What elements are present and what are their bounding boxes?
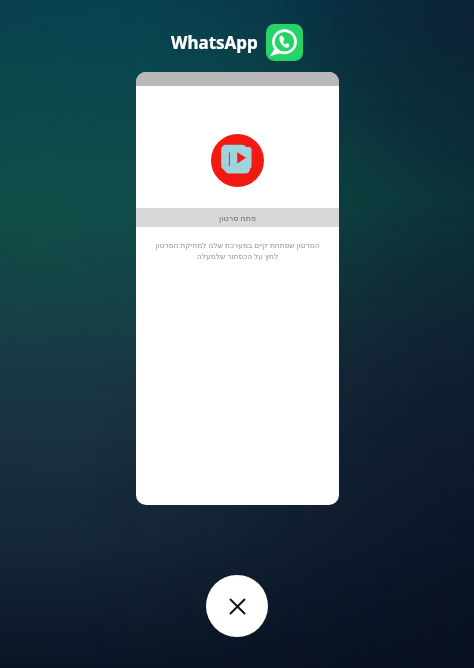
button[interactable]: Close bbox=[206, 575, 268, 637]
staticText: פתח סרטון bbox=[219, 212, 256, 223]
button[interactable]: פתח סרטון bbox=[136, 208, 339, 227]
staticText: WhatsApp bbox=[171, 31, 258, 54]
staticText: הסרטון שפתחת קיים במערכת שלנו למחיקת הסר… bbox=[146, 240, 329, 261]
button[interactable]: WhatsApp bbox=[266, 24, 303, 61]
